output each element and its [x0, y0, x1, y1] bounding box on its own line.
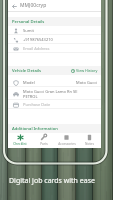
button[interactable]: Moto Gucci Gran Lamo Rn SE — [8, 87, 101, 100]
staticText: Notes — [85, 142, 94, 146]
button[interactable]: Sumit — [8, 26, 101, 35]
staticText: Digital job cards with ease — [9, 176, 95, 186]
button[interactable]: Accessories — [55, 133, 78, 147]
button[interactable]: Notes — [78, 133, 101, 147]
staticText: Moto Gucci Gran Lamo Rn SE — [23, 89, 78, 94]
button[interactable]: Email Address — [8, 44, 101, 53]
button[interactable]: Parts — [32, 133, 55, 147]
staticText: Sumit — [23, 28, 34, 33]
staticText: Personal Details — [12, 19, 45, 25]
button[interactable]: Purchase Date — [8, 100, 101, 109]
staticText: Parts — [40, 142, 48, 146]
staticText: Additional Information — [12, 126, 58, 132]
button[interactable]: Back — [10, 2, 18, 10]
staticText: +919876543210 — [23, 37, 53, 42]
button[interactable]: Model — [8, 78, 101, 87]
staticText: Email Address — [23, 46, 50, 51]
staticText: Vehicle Details — [12, 68, 42, 74]
staticText: Purchase Date — [23, 102, 51, 107]
button[interactable]: +919876543210 — [8, 35, 101, 44]
staticText: PETROL — [23, 94, 38, 99]
staticText: MMJ00cryp — [20, 2, 47, 9]
button[interactable]: Back — [8, 0, 101, 11]
staticText: Moto Gucci — [76, 80, 98, 85]
button[interactable]: View History — [71, 68, 98, 73]
staticText: Checklist — [13, 142, 27, 146]
button[interactable]: Checklist — [8, 133, 32, 147]
staticText: Model — [23, 80, 35, 85]
staticText: Accessories — [58, 142, 76, 146]
staticText: View History — [76, 68, 98, 73]
